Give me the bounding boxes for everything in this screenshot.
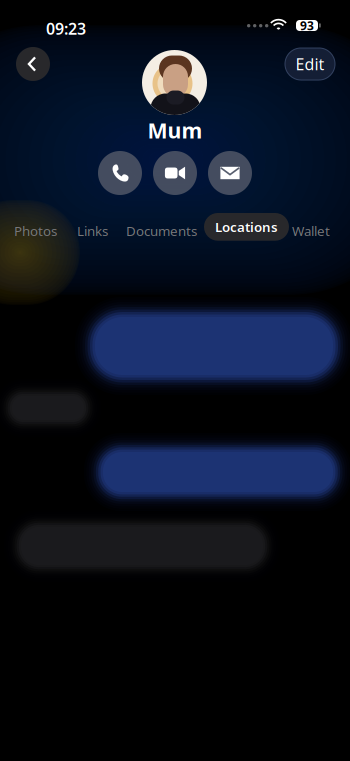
- staticText: 09:23: [46, 18, 86, 39]
- button[interactable]: Call: [98, 151, 142, 195]
- button[interactable]: FaceTime: [153, 151, 197, 195]
- staticText: Documents: [126, 222, 197, 240]
- staticText: Wallet: [292, 222, 330, 240]
- button[interactable]: Photos: [14, 217, 57, 245]
- button[interactable]: Edit: [285, 48, 335, 80]
- staticText: 93: [300, 17, 314, 33]
- button[interactable]: Mail: [208, 151, 252, 195]
- staticText: Links: [77, 222, 108, 240]
- button[interactable]: Back: [16, 47, 50, 81]
- button[interactable]: Documents: [126, 217, 197, 245]
- staticText: Photos: [14, 222, 57, 240]
- staticText: Locations: [215, 218, 278, 236]
- button[interactable]: Locations: [204, 213, 289, 241]
- staticText: Mum: [147, 116, 202, 144]
- staticText: Edit: [295, 53, 324, 75]
- button[interactable]: Links: [77, 217, 108, 245]
- button[interactable]: Wallet: [292, 217, 330, 245]
